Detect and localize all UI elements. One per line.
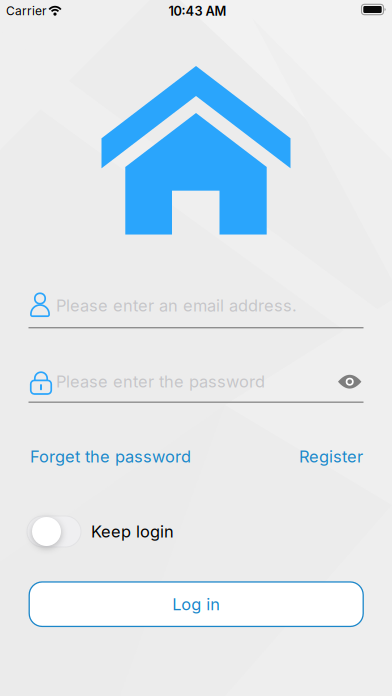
button[interactable]: Forget the password	[30, 447, 191, 466]
staticText: Log in	[172, 594, 220, 614]
button[interactable]: Keep login	[27, 516, 81, 547]
staticText: Forget the password	[30, 447, 191, 466]
staticText: 10:43 AM	[168, 3, 226, 19]
staticText: Please enter the password	[56, 372, 265, 391]
button[interactable]: Register	[299, 447, 363, 466]
staticText: Please enter an email address.	[56, 296, 297, 315]
staticText: Register	[299, 447, 363, 466]
staticText: Carrier	[6, 4, 47, 18]
button[interactable]: Log in	[29, 582, 363, 626]
button[interactable]: Show password	[332, 368, 368, 396]
staticText: Keep login	[91, 522, 174, 541]
